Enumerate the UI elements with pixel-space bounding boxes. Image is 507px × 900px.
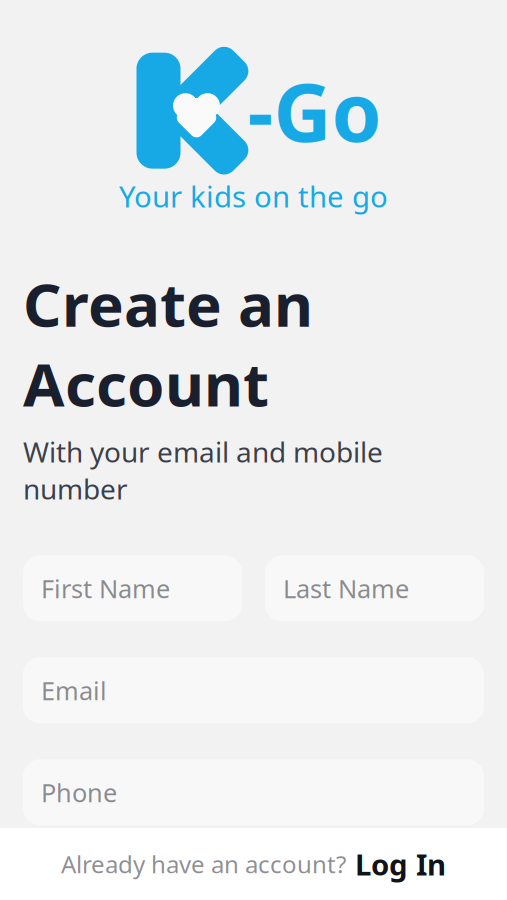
staticText: Phone — [41, 775, 117, 809]
button[interactable]: Last Name — [265, 555, 484, 621]
button[interactable]: First Name — [23, 555, 242, 621]
staticText: Create an Account — [23, 264, 313, 423]
button[interactable]: Emergency Contact Person Name 1 — [23, 861, 484, 900]
staticText: With your email and mobile number — [23, 433, 383, 507]
staticText: Emergency Contact Person Name 1 — [41, 861, 439, 900]
button[interactable]: Email — [23, 657, 484, 723]
staticText: -Go — [247, 57, 381, 164]
staticText: First Name — [41, 571, 170, 605]
button[interactable]: Phone — [23, 759, 484, 825]
staticText: Log In — [355, 844, 446, 883]
staticText: Email — [41, 673, 107, 707]
button[interactable]: Already have an account? — [0, 828, 507, 900]
staticText: Your kids on the go — [119, 177, 388, 216]
staticText: Last Name — [283, 571, 409, 605]
staticText: Already have an account? — [61, 848, 346, 880]
